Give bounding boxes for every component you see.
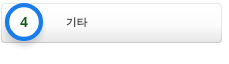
button[interactable]: 4 items xyxy=(5,3,43,41)
button[interactable] xyxy=(1,3,222,43)
staticText: 4 xyxy=(20,12,29,31)
staticText: 기타 xyxy=(66,16,87,29)
